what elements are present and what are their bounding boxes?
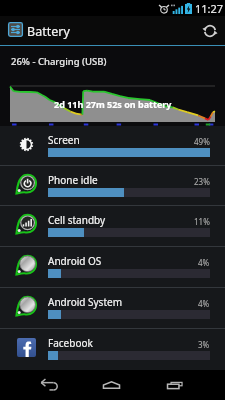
button[interactable]: Android OS bbox=[0, 247, 225, 288]
staticText: 49% bbox=[194, 136, 210, 147]
staticText: 23% bbox=[194, 176, 210, 187]
staticText: Battery bbox=[27, 23, 70, 40]
staticText: Android System bbox=[48, 295, 123, 309]
staticText: Android OS bbox=[48, 254, 102, 268]
staticText: Phone idle bbox=[48, 173, 98, 187]
staticText: Facebook bbox=[48, 336, 93, 350]
staticText: Screen bbox=[48, 133, 80, 147]
staticText: 2d 11h 27m 52s on battery bbox=[54, 98, 172, 110]
button[interactable]: Home bbox=[80, 370, 143, 400]
staticText: 4% bbox=[198, 257, 210, 268]
button[interactable]: Back bbox=[20, 370, 80, 400]
button[interactable]: Refresh bbox=[195, 16, 225, 46]
staticText: 26% - Charging (USB) bbox=[11, 55, 107, 68]
button[interactable]: Facebook bbox=[0, 329, 225, 370]
staticText: 11:27 bbox=[195, 1, 224, 16]
button[interactable]: Android System bbox=[0, 288, 225, 329]
button[interactable]: Screen bbox=[0, 126, 225, 166]
staticText: Cell standby bbox=[48, 213, 106, 227]
staticText: 11% bbox=[194, 216, 210, 227]
button[interactable]: Recent apps bbox=[143, 370, 206, 400]
button[interactable]: Cell standby bbox=[0, 206, 225, 247]
staticText: 3% bbox=[198, 339, 210, 350]
button[interactable]: Phone idle bbox=[0, 166, 225, 206]
staticText: 4% bbox=[198, 298, 210, 309]
